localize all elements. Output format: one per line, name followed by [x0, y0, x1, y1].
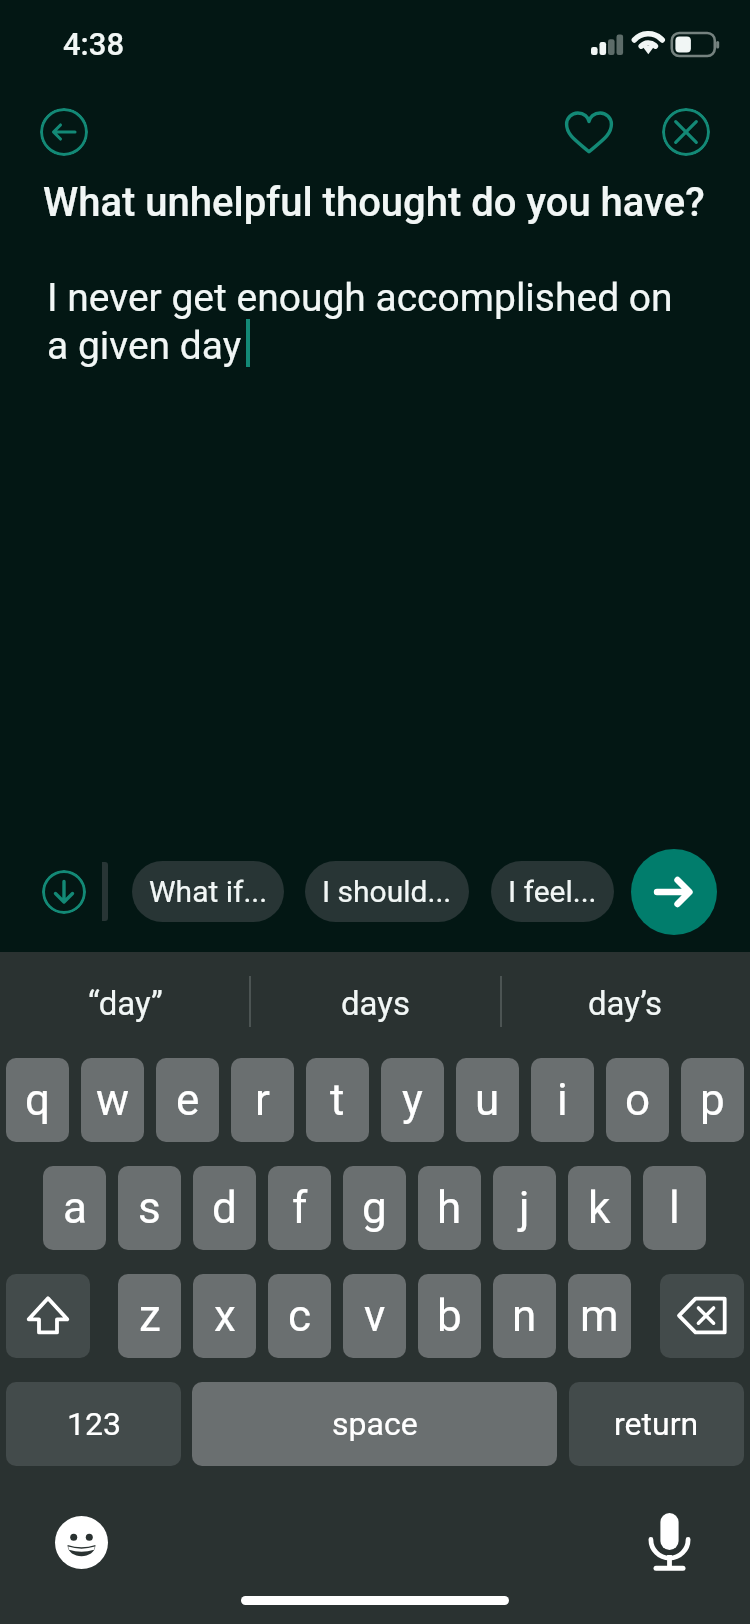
staticText: m [580, 1290, 619, 1342]
button[interactable]: a [43, 1166, 106, 1250]
button[interactable]: y [381, 1058, 444, 1142]
staticText: I feel... [508, 874, 597, 909]
button[interactable]: b [418, 1274, 481, 1358]
staticText: I should... [322, 874, 452, 909]
button[interactable]: Shift [6, 1274, 90, 1358]
button[interactable]: w [81, 1058, 144, 1142]
button[interactable]: g [343, 1166, 406, 1250]
staticText: space [332, 1405, 418, 1443]
button[interactable]: What if... [132, 861, 284, 922]
staticText: n [512, 1290, 537, 1342]
button[interactable]: Back [40, 108, 88, 156]
button[interactable]: “day” [0, 968, 250, 1038]
staticText: day’s [588, 984, 663, 1023]
button[interactable]: Favorite [561, 107, 617, 157]
button[interactable]: t [306, 1058, 369, 1142]
staticText: 4:38 [63, 26, 125, 62]
staticText: i [557, 1074, 568, 1126]
staticText: p [700, 1074, 725, 1126]
staticText: d [212, 1182, 237, 1234]
button[interactable]: Hide keyboard [42, 870, 86, 914]
button[interactable]: Submit [631, 849, 717, 935]
staticText: f [292, 1182, 308, 1234]
button[interactable]: m [568, 1274, 631, 1358]
button[interactable]: space [192, 1382, 557, 1466]
button[interactable]: z [118, 1274, 181, 1358]
button[interactable]: day’s [500, 968, 750, 1038]
staticText: u [475, 1074, 500, 1126]
staticText: s [138, 1182, 161, 1234]
staticText: j [519, 1182, 530, 1234]
button[interactable]: return [569, 1382, 744, 1466]
button[interactable]: d [193, 1166, 256, 1250]
staticText: c [288, 1290, 312, 1342]
button[interactable]: l [643, 1166, 706, 1250]
staticText: days [341, 984, 410, 1023]
button[interactable]: Backspace [660, 1274, 744, 1358]
staticText: 123 [67, 1405, 121, 1443]
button[interactable]: j [493, 1166, 556, 1250]
button[interactable]: Dictate [645, 1505, 695, 1577]
staticText: What unhelpful thought do you have? [43, 179, 749, 226]
staticText: g [362, 1182, 387, 1234]
staticText: z [139, 1290, 161, 1342]
button[interactable]: x [193, 1274, 256, 1358]
staticText: b [437, 1290, 462, 1342]
staticText: l [669, 1182, 680, 1234]
button[interactable]: p [681, 1058, 744, 1142]
staticText: “day” [88, 984, 163, 1023]
button[interactable]: v [343, 1274, 406, 1358]
button[interactable]: h [418, 1166, 481, 1250]
button[interactable]: q [6, 1058, 69, 1142]
button[interactable]: u [456, 1058, 519, 1142]
staticText: h [437, 1182, 462, 1234]
button[interactable]: i [531, 1058, 594, 1142]
staticText: I never get enough accomplished on a giv… [47, 275, 737, 368]
staticText: r [255, 1074, 270, 1126]
staticText: w [96, 1074, 130, 1126]
button[interactable]: k [568, 1166, 631, 1250]
button[interactable]: n [493, 1274, 556, 1358]
staticText: v [364, 1290, 386, 1342]
button[interactable]: c [268, 1274, 331, 1358]
staticText: o [625, 1074, 651, 1126]
staticText: a [63, 1182, 87, 1234]
staticText: y [402, 1074, 423, 1126]
staticText: return [614, 1405, 699, 1443]
button[interactable]: Emoji [55, 1516, 108, 1569]
button[interactable]: 123 [6, 1382, 181, 1466]
staticText: t [330, 1074, 345, 1126]
button[interactable]: e [156, 1058, 219, 1142]
button[interactable]: I feel... [491, 861, 614, 922]
button[interactable]: o [606, 1058, 669, 1142]
button[interactable]: r [231, 1058, 294, 1142]
staticText: What if... [149, 874, 268, 909]
button[interactable]: s [118, 1166, 181, 1250]
staticText: k [588, 1182, 611, 1234]
staticText: q [25, 1074, 51, 1126]
staticText: x [214, 1290, 236, 1342]
staticText: e [176, 1074, 200, 1126]
button[interactable]: I should... [305, 861, 469, 922]
button[interactable]: days [250, 968, 500, 1038]
button[interactable]: Close [662, 108, 710, 156]
button[interactable]: f [268, 1166, 331, 1250]
